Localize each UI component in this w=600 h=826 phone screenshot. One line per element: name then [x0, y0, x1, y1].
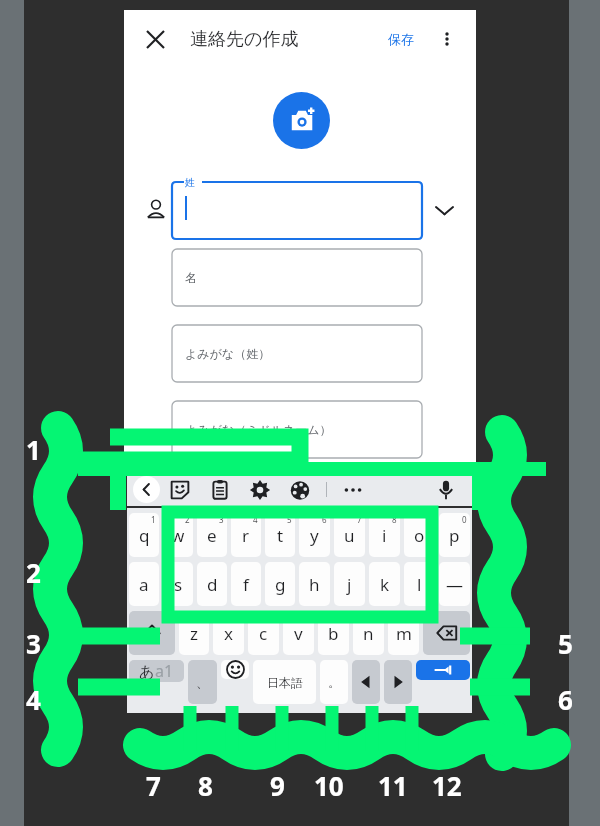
button[interactable]: Close	[138, 22, 172, 56]
staticText: 5	[287, 514, 292, 525]
button[interactable]: Stickers	[167, 477, 193, 503]
staticText: 1	[151, 514, 156, 525]
button[interactable]: r	[231, 513, 261, 557]
button[interactable]: Add photo	[273, 92, 330, 149]
staticText: s	[174, 573, 183, 596]
staticText: 10	[314, 768, 344, 803]
button[interactable]: Expand	[430, 196, 458, 224]
button[interactable]: 保存	[384, 27, 418, 51]
button[interactable]: 、	[188, 660, 217, 704]
button[interactable]: j	[334, 562, 365, 606]
staticText: p	[449, 524, 460, 547]
staticText: 2	[26, 555, 41, 590]
staticText: 0	[462, 514, 467, 525]
button[interactable]: h	[299, 562, 330, 606]
staticText: 連絡先の作成	[190, 28, 299, 51]
button[interactable]: n	[353, 611, 384, 655]
button[interactable]	[172, 465, 422, 499]
button[interactable]: Move cursor left	[352, 660, 380, 704]
button[interactable]: Clipboard	[207, 477, 233, 503]
button[interactable]: More options	[432, 24, 462, 54]
staticText: あ	[139, 663, 155, 682]
button[interactable]: q	[129, 513, 159, 557]
button[interactable]: e	[197, 513, 227, 557]
staticText: c	[259, 622, 268, 645]
button[interactable]: v	[283, 611, 314, 655]
staticText: a	[139, 573, 149, 596]
staticText: x	[224, 622, 233, 645]
button[interactable]: y	[299, 513, 330, 557]
staticText: よみがな（姓）	[185, 346, 271, 361]
staticText: u	[344, 524, 355, 547]
staticText: 6	[322, 514, 327, 525]
button[interactable]: a	[129, 562, 159, 606]
staticText: 11	[378, 768, 408, 803]
button[interactable]: Back	[133, 476, 160, 503]
button[interactable]: Emoji	[221, 660, 249, 679]
staticText: 、	[196, 674, 209, 690]
button[interactable]: i	[369, 513, 400, 557]
staticText: —	[446, 573, 463, 596]
staticText: 3	[219, 514, 224, 525]
button[interactable]: w	[163, 513, 193, 557]
staticText: d	[207, 573, 218, 596]
button[interactable]: d	[197, 562, 227, 606]
staticText: i	[382, 524, 387, 547]
staticText: 12	[432, 768, 462, 803]
staticText: f	[243, 573, 249, 596]
button[interactable]: More	[340, 477, 366, 503]
staticText: 7	[146, 768, 161, 803]
staticText: g	[275, 573, 286, 596]
button[interactable]: l	[404, 562, 435, 606]
button[interactable]: Shift	[129, 611, 175, 655]
button[interactable]: Theme	[287, 477, 313, 503]
staticText: k	[380, 573, 390, 596]
button[interactable]: c	[248, 611, 279, 655]
button[interactable]: Backspace	[423, 611, 470, 655]
button[interactable]: 名	[172, 249, 422, 306]
staticText: m	[396, 622, 412, 645]
staticText: e	[207, 524, 217, 547]
staticText: t	[277, 524, 284, 547]
button[interactable]: あ	[129, 660, 184, 682]
button[interactable]: Next	[416, 660, 470, 680]
staticText: 2	[185, 514, 190, 525]
staticText: b	[328, 622, 339, 645]
button[interactable]: g	[265, 562, 295, 606]
button[interactable]: Settings	[247, 477, 273, 503]
button[interactable]: m	[388, 611, 419, 655]
staticText: 姓	[185, 176, 195, 189]
button[interactable]: よみがな（ミドルネーム）	[172, 401, 422, 458]
staticText: 3	[26, 626, 41, 661]
button[interactable]: x	[213, 611, 244, 655]
staticText: v	[294, 622, 303, 645]
button[interactable]: p	[439, 513, 470, 557]
button[interactable]: Move cursor right	[384, 660, 412, 704]
button[interactable]: u	[334, 513, 365, 557]
staticText: 名	[185, 270, 197, 285]
staticText: z	[190, 622, 198, 645]
button[interactable]: k	[369, 562, 400, 606]
staticText: y	[310, 524, 319, 547]
button[interactable]: Voice input	[433, 477, 459, 503]
button[interactable]: f	[231, 562, 261, 606]
staticText: 7	[357, 514, 362, 525]
staticText: l	[417, 573, 422, 596]
staticText: 4	[253, 514, 258, 525]
button[interactable]: z	[179, 611, 209, 655]
button[interactable]: 。	[320, 660, 348, 704]
staticText: 9	[270, 768, 285, 803]
staticText: j	[347, 573, 352, 596]
button[interactable]: b	[318, 611, 349, 655]
button[interactable]: o	[404, 513, 435, 557]
button[interactable]: —	[439, 562, 470, 606]
button[interactable]: 日本語	[253, 660, 316, 704]
staticText: 5	[558, 626, 573, 661]
button[interactable]: よみがな（姓）	[172, 325, 422, 382]
button[interactable]: t	[265, 513, 295, 557]
staticText: 8	[392, 514, 397, 525]
staticText: 保存	[388, 31, 414, 47]
button[interactable]: s	[163, 562, 193, 606]
staticText: 1	[26, 432, 41, 467]
